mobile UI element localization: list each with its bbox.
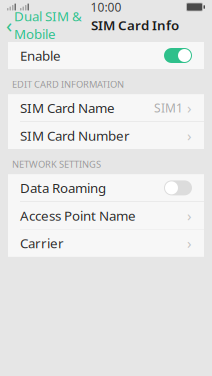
staticText: Data Roaming bbox=[20, 179, 106, 197]
button[interactable]: Access Point Name bbox=[8, 202, 204, 229]
staticText: › bbox=[187, 206, 192, 225]
staticText: › bbox=[187, 126, 192, 145]
staticText: ‹ bbox=[6, 12, 12, 38]
staticText: Access Point Name bbox=[20, 207, 136, 224]
staticText: 10:00 bbox=[90, 0, 121, 15]
button[interactable]: Carrier bbox=[8, 230, 204, 257]
button[interactable]: SIM Card Number bbox=[8, 122, 204, 149]
staticText: Enable bbox=[20, 47, 61, 64]
staticText: SIM Card Name bbox=[20, 99, 115, 117]
staticText: NETWORK SETTINGS bbox=[12, 158, 101, 170]
staticText: › bbox=[187, 98, 192, 118]
staticText: Carrier bbox=[20, 234, 64, 252]
staticText: EDIT CARD INFORMATION bbox=[12, 78, 124, 90]
staticText: › bbox=[187, 233, 192, 253]
button[interactable]: Enable bbox=[8, 42, 204, 69]
button[interactable]: ‹ bbox=[0, 3, 82, 47]
button[interactable]: SIM Card Name bbox=[8, 94, 204, 121]
staticText: SIM Card Number bbox=[20, 127, 130, 144]
staticText: SIM Card Info bbox=[91, 16, 179, 34]
staticText: Dual SIM & Mobile bbox=[14, 7, 82, 43]
staticText: SIM1 bbox=[154, 100, 183, 116]
button[interactable]: Data Roaming bbox=[8, 174, 204, 201]
